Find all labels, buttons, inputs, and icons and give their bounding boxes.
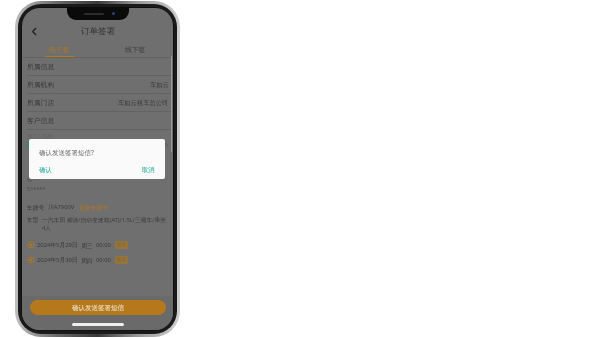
staticText: 取消 bbox=[142, 166, 155, 174]
staticText: 所属信息 bbox=[27, 62, 55, 71]
staticText: 川A7900V bbox=[48, 203, 75, 211]
staticText: 所属门店 bbox=[27, 98, 55, 107]
button[interactable]: 所属机构 bbox=[22, 76, 173, 93]
button[interactable]: 线下签 bbox=[97, 42, 173, 57]
button[interactable]: Back bbox=[25, 22, 43, 40]
button[interactable]: 确认发送签署短信 bbox=[30, 300, 166, 315]
button[interactable]: 更换车牌号 bbox=[79, 204, 108, 211]
staticText: 取车 bbox=[117, 242, 126, 248]
button[interactable]: 确认 bbox=[39, 166, 52, 174]
staticText: 2024年5月29日 bbox=[37, 241, 78, 249]
staticText: 取车 bbox=[117, 257, 126, 263]
button[interactable]: 所属门店 bbox=[22, 94, 173, 111]
staticText: 张** bbox=[27, 175, 39, 183]
button[interactable]: 客户信息 bbox=[22, 112, 173, 129]
staticText: 预订人信息 bbox=[27, 133, 52, 139]
staticText: 00:00 bbox=[96, 256, 111, 264]
staticText: 确认发送签署短信 bbox=[72, 304, 124, 312]
staticText: 确认发送签署短信? bbox=[39, 148, 94, 157]
staticText: 2024年5月30日 bbox=[37, 256, 78, 264]
staticText: 更换车牌号 bbox=[79, 204, 108, 211]
staticText: 车如云 bbox=[150, 81, 169, 89]
button[interactable]: 电子签 bbox=[22, 42, 97, 57]
staticText: 订单签署 bbox=[81, 26, 115, 37]
staticText: 周三 bbox=[81, 242, 93, 249]
staticText: 车如云租车总公司 bbox=[118, 99, 169, 107]
staticText: 车型 bbox=[27, 216, 39, 223]
button[interactable]: 所属信息 bbox=[22, 58, 173, 75]
staticText: 51**** bbox=[27, 185, 46, 192]
staticText: 00:00 bbox=[96, 241, 111, 249]
staticText: 身份证/1户 bbox=[143, 142, 168, 149]
staticText: 电子签 bbox=[49, 45, 70, 54]
staticText: 一汽丰田 威驰/自动变速箱(AT)/1.5L/三厢车/乘坐4人 bbox=[42, 216, 168, 232]
staticText: 周四 bbox=[81, 257, 93, 264]
staticText: 所属机构 bbox=[27, 80, 55, 89]
staticText: 确认 bbox=[39, 166, 52, 174]
button[interactable]: 取消 bbox=[142, 166, 155, 174]
staticText: 线下签 bbox=[125, 45, 146, 54]
staticText: 车牌号 bbox=[27, 204, 45, 211]
staticText: 客户信息 bbox=[27, 116, 55, 125]
